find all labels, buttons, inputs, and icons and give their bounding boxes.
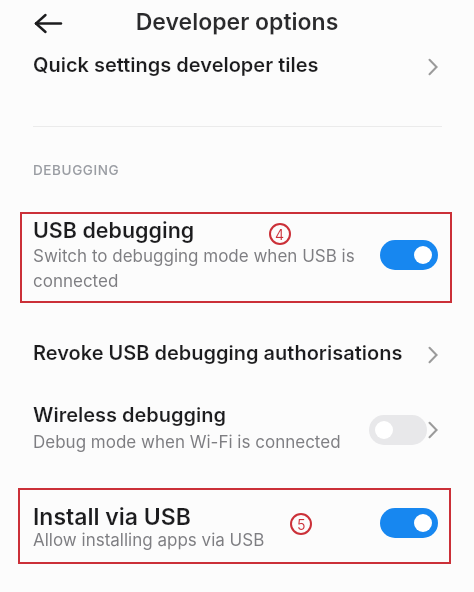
staticText: Install via USB (33, 503, 191, 531)
button[interactable]: USB debugging (0, 213, 474, 301)
button[interactable] (380, 240, 438, 270)
staticText: 4 (275, 226, 285, 243)
button[interactable]: Revoke USB debugging authorisations (0, 334, 474, 376)
button[interactable]: Wireless debugging (0, 392, 474, 458)
staticText: USB debugging (33, 217, 195, 243)
button[interactable]: Quick settings developer tiles (0, 47, 474, 91)
button[interactable] (369, 415, 427, 445)
staticText: Developer options (0, 8, 474, 36)
staticText: Quick settings developer tiles (33, 53, 319, 77)
staticText: Revoke USB debugging authorisations (33, 341, 403, 365)
button[interactable] (30, 8, 66, 40)
staticText: 5 (297, 516, 306, 533)
staticText: Debug mode when Wi-Fi is connected (33, 432, 341, 453)
staticText: connected (33, 271, 119, 292)
staticText: Wireless debugging (33, 403, 227, 427)
staticText: Allow installing apps via USB (33, 530, 265, 551)
staticText: DEBUGGING (33, 162, 120, 178)
staticText: Switch to debugging mode when USB is (33, 246, 355, 267)
button[interactable]: Install via USB (0, 492, 474, 562)
button[interactable] (380, 508, 438, 538)
